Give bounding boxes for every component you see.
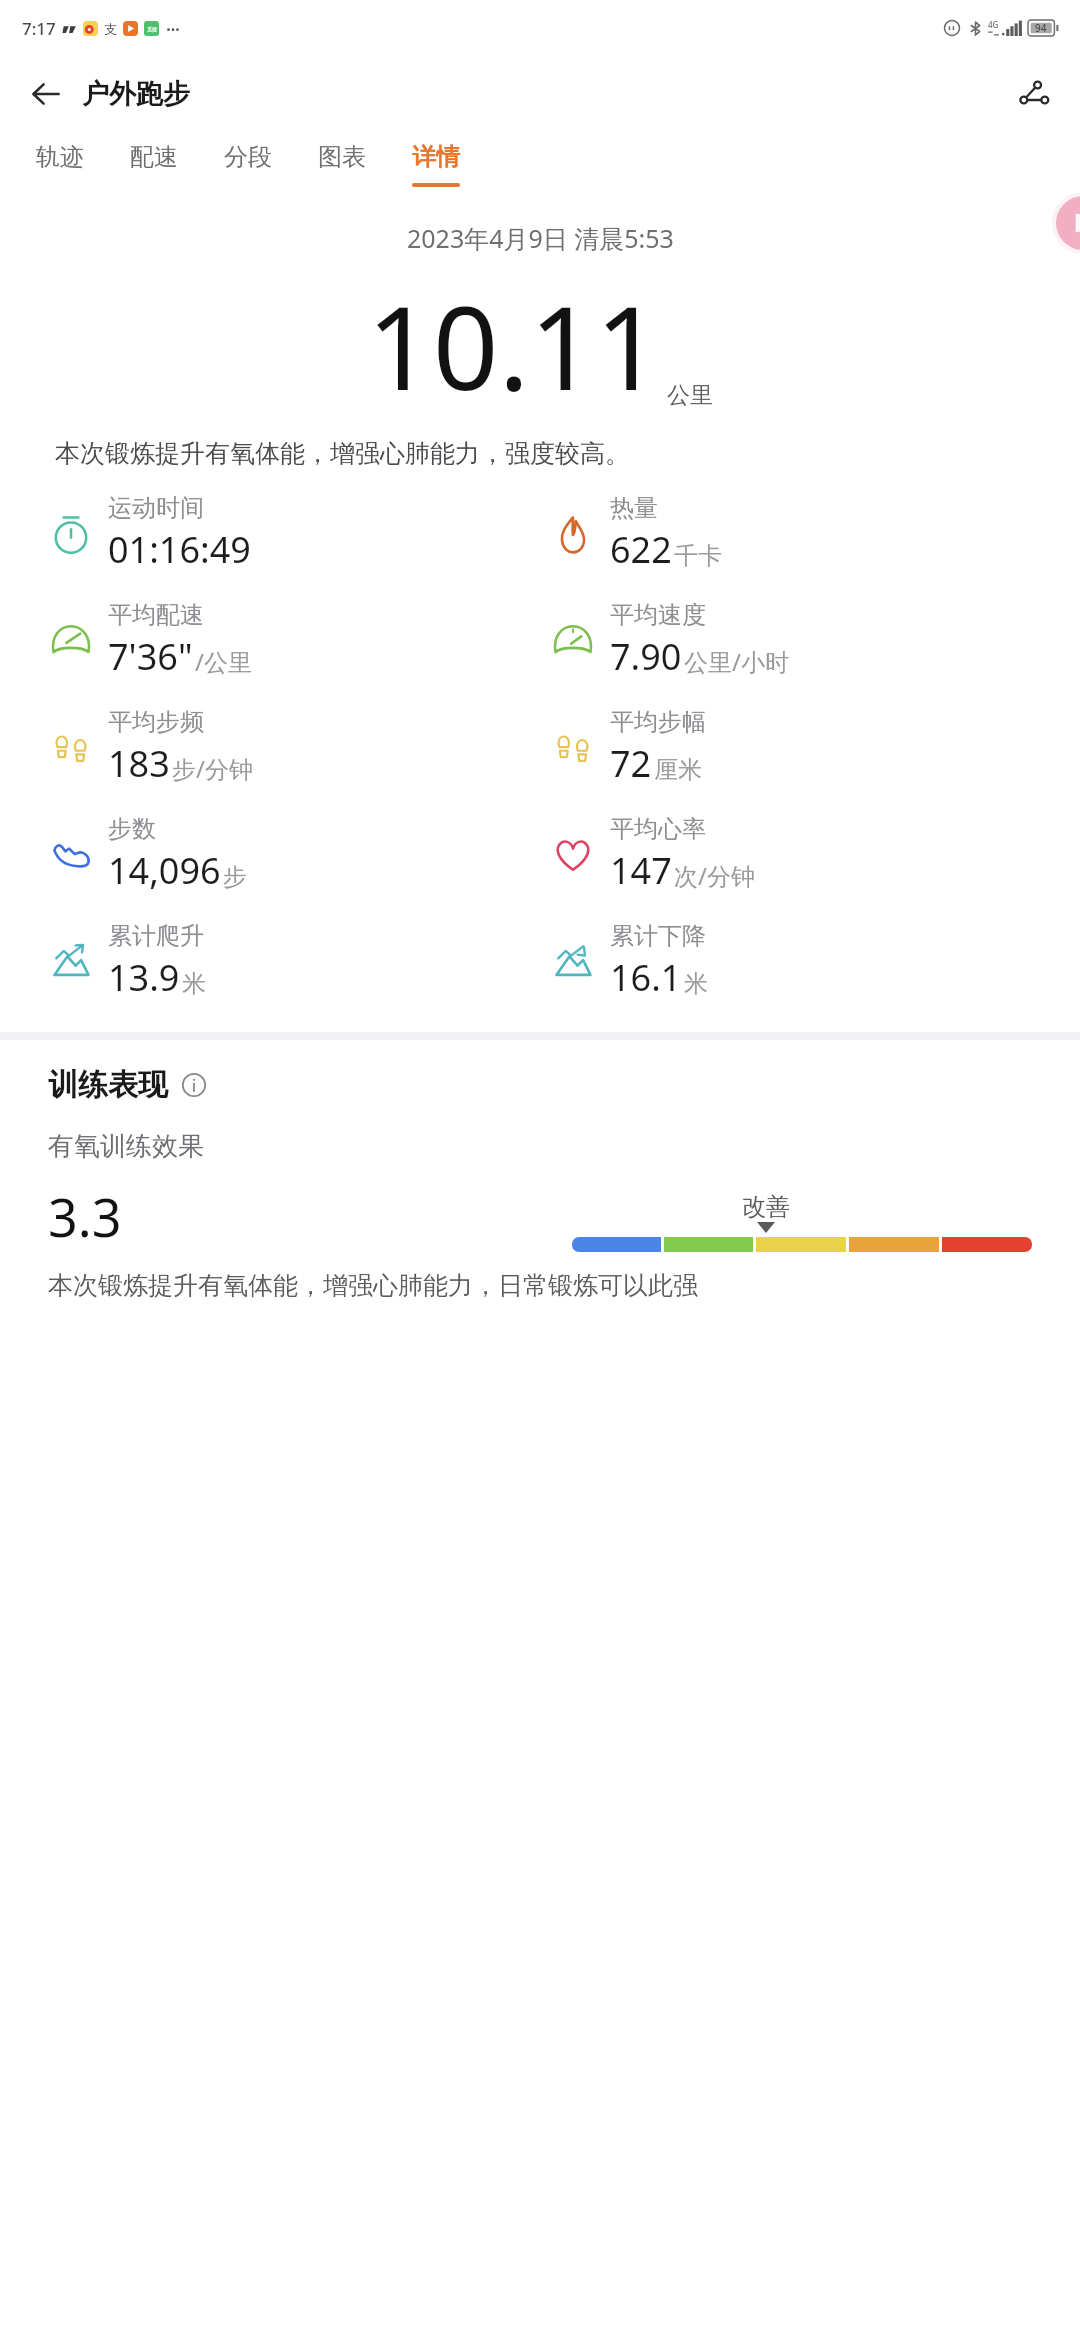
staticText: 户外跑步 <box>82 77 190 111</box>
staticText: 4G <box>988 19 999 30</box>
staticText: 7.90 <box>610 632 682 681</box>
staticText: 10.11 <box>367 267 661 424</box>
staticText: 7:17 <box>22 17 56 40</box>
staticText: 训练表现 <box>48 1066 168 1104</box>
button[interactable]: 轨迹 <box>30 136 90 193</box>
staticText: 运动时间 <box>108 493 204 523</box>
button[interactable]: 热量 <box>550 491 1052 576</box>
button[interactable]: 图表 <box>312 136 372 193</box>
staticText: 公里 <box>667 381 713 410</box>
staticText: 平均步频 <box>108 707 204 737</box>
staticText: 改善 <box>742 1192 790 1222</box>
staticText: 本次锻炼提升有氧体能，增强心肺能力，日常锻炼可以此强 <box>48 1270 698 1301</box>
staticText: 3.3 <box>48 1181 122 1252</box>
staticText: 支 <box>104 21 117 37</box>
staticText: 累计下降 <box>610 921 706 951</box>
button[interactable]: 平均步幅 <box>550 705 1052 790</box>
button[interactable]: 运动时间 <box>48 491 550 576</box>
staticText: 有氧训练效果 <box>48 1130 204 1163</box>
staticText: 平均步幅 <box>610 707 706 737</box>
button[interactable]: 平均配速 <box>48 598 550 683</box>
staticText: 米 <box>684 969 708 999</box>
button[interactable]: Back <box>22 70 70 118</box>
staticText: 累计爬升 <box>108 921 204 951</box>
staticText: 01:16:49 <box>108 525 251 574</box>
staticText: 72 <box>610 739 652 788</box>
staticText: 平均心率 <box>610 814 706 844</box>
button[interactable]: 平均心率 <box>550 812 1052 897</box>
button[interactable]: Share <box>1010 70 1058 118</box>
staticText: 觅健 <box>147 26 157 32</box>
staticText: 千卡 <box>674 541 722 571</box>
staticText: /公里 <box>195 645 252 678</box>
staticText: 步 <box>223 862 247 892</box>
button[interactable]: 分段 <box>218 136 278 193</box>
button[interactable]: 平均速度 <box>550 598 1052 683</box>
staticText: 147 <box>610 846 672 895</box>
staticText: 本次锻炼提升有氧体能，增强心肺能力，强度较高。 <box>55 438 1025 469</box>
button[interactable]: 详情 <box>406 136 466 193</box>
button[interactable]: 配速 <box>124 136 184 193</box>
staticText: 平均速度 <box>610 600 706 630</box>
staticText: 183 <box>108 739 170 788</box>
staticText: 分段 <box>224 142 272 172</box>
staticText: 步/分钟 <box>172 752 253 785</box>
staticText: 16.1 <box>610 953 682 1002</box>
button[interactable]: 累计下降 <box>550 919 1052 1004</box>
staticText: 米 <box>182 969 206 999</box>
staticText: 平均配速 <box>108 600 204 630</box>
staticText: 14,096 <box>108 846 221 895</box>
staticText: 7'36" <box>108 632 193 681</box>
staticText: 配速 <box>130 142 178 172</box>
button[interactable]: Badge <box>1056 196 1080 250</box>
staticText: 622 <box>610 525 672 574</box>
staticText: 2023年4月9日 清晨5:53 <box>407 221 674 255</box>
button[interactable]: 步数 <box>48 812 550 897</box>
staticText: 详情 <box>412 142 460 172</box>
staticText: 公里/小时 <box>684 645 789 678</box>
staticText: 图表 <box>318 142 366 172</box>
staticText: 热量 <box>610 493 658 523</box>
button[interactable]: Info <box>178 1069 210 1101</box>
button[interactable]: 累计爬升 <box>48 919 550 1004</box>
staticText: 94 <box>1035 21 1047 35</box>
staticText: 厘米 <box>654 755 702 785</box>
staticText: 轨迹 <box>36 142 84 172</box>
staticText: 次/分钟 <box>674 859 755 892</box>
staticText: 步数 <box>108 814 156 844</box>
staticText: 13.9 <box>108 953 180 1002</box>
button[interactable]: 平均步频 <box>48 705 550 790</box>
